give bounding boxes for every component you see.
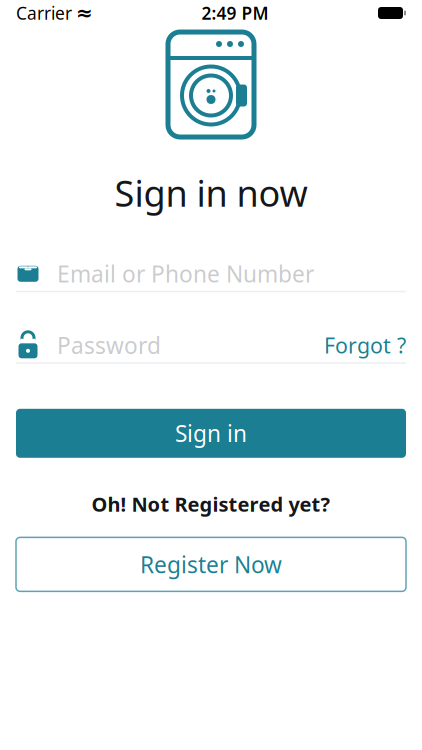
staticText: Email or Phone Number <box>57 259 314 289</box>
button[interactable]: Sign in <box>16 409 406 458</box>
button[interactable]: Forgot ? <box>312 325 406 365</box>
staticText: Sign in now <box>114 169 307 217</box>
staticText: Register Now <box>140 549 282 579</box>
staticText: ≈ <box>76 2 93 24</box>
staticText: Oh! Not Registered yet? <box>91 491 330 517</box>
staticText: 2:49 PM <box>201 1 268 24</box>
staticText: Forgot ? <box>324 331 406 359</box>
button[interactable]: Register Now <box>16 537 406 591</box>
staticText: Password <box>57 330 161 360</box>
staticText: Carrier <box>16 1 72 24</box>
staticText: Sign in <box>175 418 247 448</box>
